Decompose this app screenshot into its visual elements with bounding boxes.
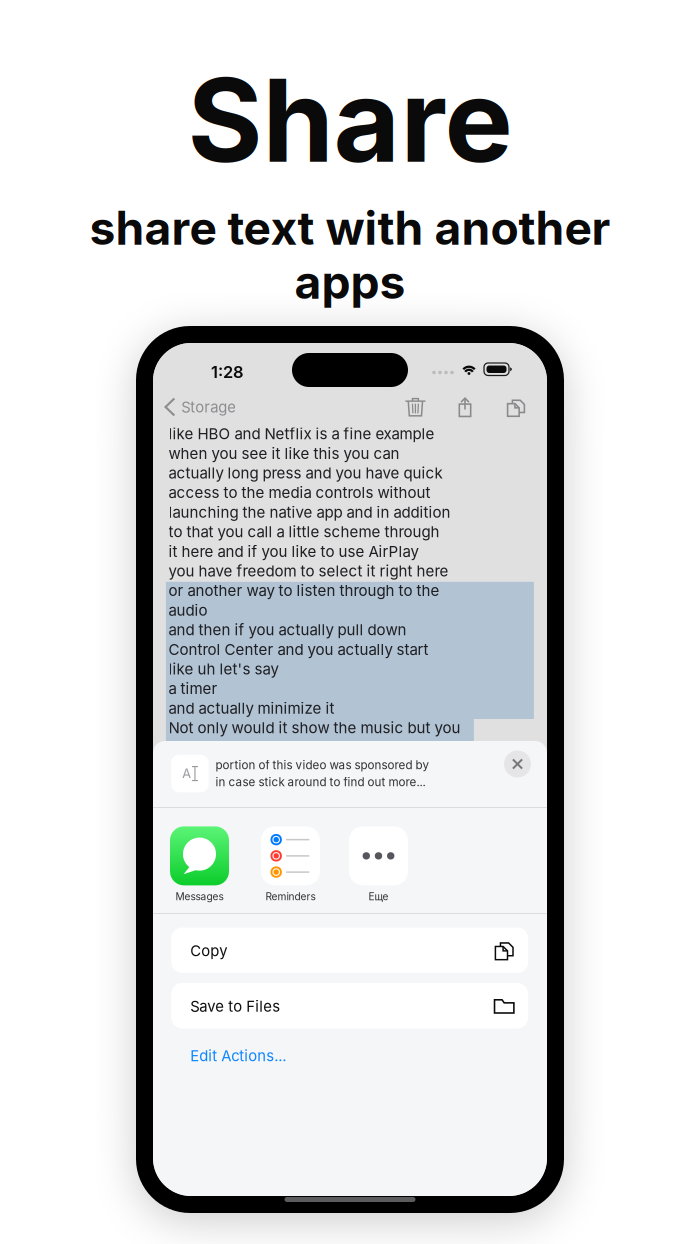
button[interactable]: Close: [504, 750, 531, 777]
staticText: a timer: [168, 679, 217, 698]
staticText: Control Center and you actually start: [168, 640, 428, 658]
staticText: access to the media controls without: [168, 483, 430, 502]
button[interactable]: Share: [447, 389, 483, 425]
staticText: 1:28: [211, 362, 243, 382]
staticText: it here and if you like to use AirPlay: [168, 542, 418, 560]
staticText: and actually minimize it: [168, 699, 334, 717]
staticText: portion of this video was sponsored by: [215, 758, 429, 772]
button[interactable]: Delete: [397, 389, 433, 425]
staticText: like uh let's say: [168, 660, 278, 678]
staticText: in case stick around to find out more...: [215, 775, 425, 789]
staticText: share text with another: [89, 200, 610, 256]
staticText: and then if you actually pull down: [168, 621, 406, 639]
button[interactable]: Messages: [162, 824, 236, 904]
staticText: Share: [187, 51, 512, 189]
button[interactable]: Reminders: [253, 824, 327, 904]
staticText: Save to Files: [190, 997, 280, 1015]
staticText: actually long press and you have quick: [168, 464, 442, 482]
staticText: Messages: [175, 890, 223, 903]
staticText: apps: [294, 254, 405, 310]
button[interactable]: Еще: [341, 824, 415, 904]
staticText: or another way to listen through to the: [168, 581, 439, 600]
staticText: Not only would it show the music but you: [168, 719, 460, 737]
staticText: Copy: [190, 942, 227, 960]
staticText: A: [182, 765, 191, 782]
staticText: Storage: [181, 398, 236, 416]
button[interactable]: Edit Actions...: [171, 1040, 528, 1070]
staticText: launching the native app and in addition: [168, 503, 450, 521]
button[interactable]: Storage: [153, 389, 242, 425]
staticText: when you see it like this you can: [168, 444, 399, 462]
button[interactable]: Save to Files: [171, 983, 528, 1028]
staticText: like HBO and Netflix is a fine example: [168, 425, 434, 443]
staticText: audio: [168, 601, 207, 619]
button[interactable]: Copy: [171, 927, 528, 973]
staticText: Reminders: [265, 890, 315, 903]
staticText: Еще: [368, 890, 388, 903]
staticText: to that you call a little scheme through: [168, 523, 439, 541]
staticText: Edit Actions...: [190, 1047, 286, 1065]
staticText: you have freedom to select it right here: [168, 562, 448, 580]
button[interactable]: Copy: [498, 389, 534, 425]
